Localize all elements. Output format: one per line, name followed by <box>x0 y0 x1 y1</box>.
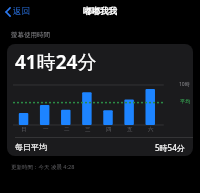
staticText: 10時 <box>179 81 190 88</box>
staticText: 螢幕使用時間 <box>11 31 50 39</box>
staticText: 更新時間：今天 凌晨 4:28 <box>11 163 75 171</box>
staticText: 三 <box>85 126 91 133</box>
other: Back <box>5 7 11 17</box>
staticText: 5時54分 <box>155 142 185 153</box>
button[interactable]: 每日平均 <box>7 138 193 156</box>
staticText: 41時24分 <box>15 49 97 75</box>
staticText: 一 <box>43 126 49 133</box>
staticText: 五 <box>127 126 133 133</box>
staticText: 每日平均 <box>15 142 47 152</box>
staticText: 四 <box>106 126 112 133</box>
staticText: 六 <box>148 126 154 133</box>
button[interactable]: Back <box>3 4 32 19</box>
staticText: 日 <box>21 126 27 133</box>
staticText: 二 <box>64 126 70 133</box>
staticText: 平均 <box>180 98 190 104</box>
staticText: 返回 <box>13 6 30 17</box>
staticText: 嘟嘟我我 <box>83 6 117 17</box>
button[interactable]: 41時24分 <box>7 44 193 156</box>
